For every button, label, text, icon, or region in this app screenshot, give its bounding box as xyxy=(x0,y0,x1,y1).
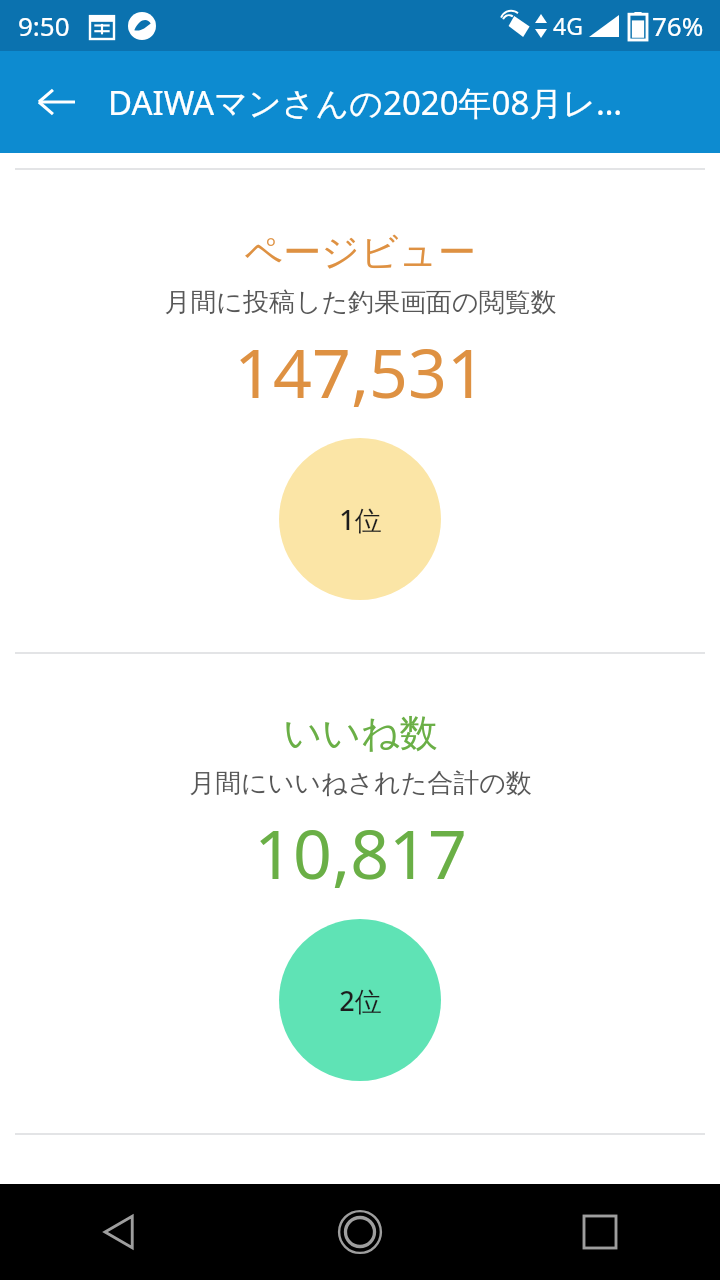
staticText: 2位 xyxy=(339,982,382,1019)
staticText: DAIWAマンさんの2020年08月レ… xyxy=(108,80,623,125)
staticText: ページビュー xyxy=(244,228,476,276)
button[interactable]: Back xyxy=(22,68,90,136)
staticText: 76% xyxy=(652,8,704,43)
staticText: 月間にいいねされた合計の数 xyxy=(189,767,532,800)
button[interactable]: いいね数 xyxy=(0,654,720,1133)
staticText: 10,817 xyxy=(254,806,467,899)
button[interactable]: ページビュー xyxy=(0,170,720,652)
staticText: 9:50 xyxy=(18,8,70,43)
staticText: いいね数 xyxy=(283,709,438,757)
button[interactable]: Back xyxy=(72,1184,168,1280)
staticText: 月間に投稿した釣果画面の閲覧数 xyxy=(164,286,557,319)
staticText: 4G xyxy=(553,10,583,41)
staticText: 147,531 xyxy=(234,325,486,418)
button[interactable]: Recent apps xyxy=(552,1184,648,1280)
button[interactable]: Home xyxy=(312,1184,408,1280)
staticText: 1位 xyxy=(339,501,382,538)
